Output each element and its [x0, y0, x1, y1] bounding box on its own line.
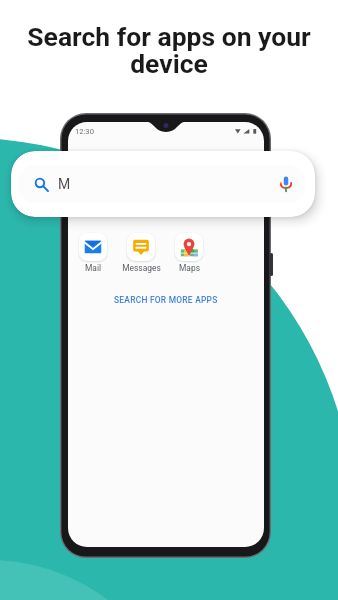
staticText: SEARCH FOR MORE APPS	[114, 295, 218, 305]
staticText: Messages	[122, 263, 161, 273]
button[interactable]: Messages	[117, 233, 165, 273]
staticText: Search for apps on your device	[20, 21, 318, 80]
button[interactable]: M	[17, 165, 306, 203]
button[interactable]: SEARCH FOR MORE APPS	[68, 295, 264, 305]
button[interactable]: Maps	[165, 233, 213, 273]
button[interactable]: Voice search	[276, 174, 296, 194]
staticText: Mail	[85, 263, 101, 273]
staticText: M	[58, 176, 71, 192]
staticText: Maps	[179, 263, 200, 273]
staticText: 12:30	[75, 127, 94, 136]
button[interactable]: Mail	[69, 233, 117, 273]
